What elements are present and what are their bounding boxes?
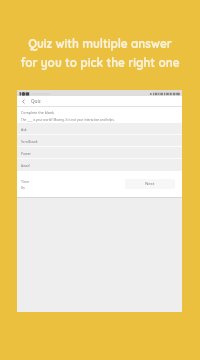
staticText: Quiz with multiple answer <box>28 36 172 51</box>
staticText: for you to pick the right one <box>20 55 180 70</box>
staticText: Quiz <box>31 98 41 104</box>
button[interactable]: Next <box>125 179 175 189</box>
button[interactable]: Ask <box>17 123 182 135</box>
staticText: Power <box>21 151 32 156</box>
button[interactable]: Back <box>20 98 27 105</box>
staticText: 0s <box>21 185 25 190</box>
staticText: The ____ is your world? Moving. It is no… <box>21 118 115 122</box>
staticText: Scrollbook <box>21 139 38 144</box>
staticText: Next <box>145 181 155 187</box>
staticText: Time <box>21 179 30 184</box>
button[interactable]: Awar! <box>17 159 182 171</box>
staticText: Awar! <box>21 163 31 168</box>
staticText: Complete the blank. <box>21 110 55 115</box>
staticText: Ask <box>21 127 27 132</box>
button[interactable]: Power <box>17 147 182 159</box>
button[interactable]: Scrollbook <box>17 135 182 147</box>
